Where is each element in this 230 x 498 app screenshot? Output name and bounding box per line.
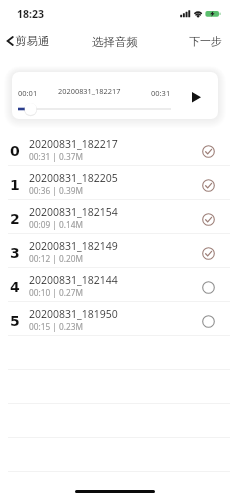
staticText: 剪易通 [15,34,50,48]
button[interactable]: Selected [186,166,230,200]
staticText: 00:31 [151,88,171,98]
staticText: 1 [10,177,20,193]
staticText: 2 [10,211,20,227]
button[interactable] [12,72,218,119]
staticText: 20200831_182154 [29,205,118,219]
button[interactable]: Selected [186,200,230,234]
staticText: 00:36 | 0.39M [29,185,84,196]
staticText: 20200831_181950 [29,307,118,321]
button[interactable]: Not selected [186,302,230,336]
staticText: 4 [10,279,20,295]
staticText: 20200831_182144 [29,273,118,287]
button[interactable]: 4 [0,268,230,302]
staticText: 00:10 | 0.27M [29,287,84,298]
staticText: 3 [10,245,20,261]
staticText: 20200831_182217 [58,86,121,96]
button[interactable]: 3 [0,234,230,268]
staticText: 0 [10,143,20,159]
staticText: 18:23 [17,7,44,21]
button[interactable]: 2 [0,200,230,234]
staticText: 00:31 | 0.37M [29,151,84,162]
button[interactable]: 0 [0,132,230,166]
button[interactable]: Selected [186,234,230,268]
button[interactable]: 5 [0,302,230,336]
staticText: 20200831_182205 [29,171,118,185]
button[interactable]: Back 剪易通 [0,30,58,52]
staticText: 20200831_182217 [29,137,118,151]
button[interactable]: Not selected [186,268,230,302]
button[interactable]: Selected [186,132,230,166]
staticText: 00:01 [18,88,38,98]
button[interactable]: 1 [0,166,230,200]
button[interactable]: Play [186,86,208,108]
staticText: 20200831_182149 [29,239,118,253]
staticText: 00:15 | 0.23M [29,321,84,332]
staticText: 下一步 [189,34,222,48]
staticText: 00:09 | 0.14M [29,219,84,230]
staticText: 选择音频 [92,35,138,49]
staticText: 5 [10,313,20,329]
staticText: 00:12 | 0.20M [29,253,84,264]
button[interactable]: 下一步 [181,30,230,52]
